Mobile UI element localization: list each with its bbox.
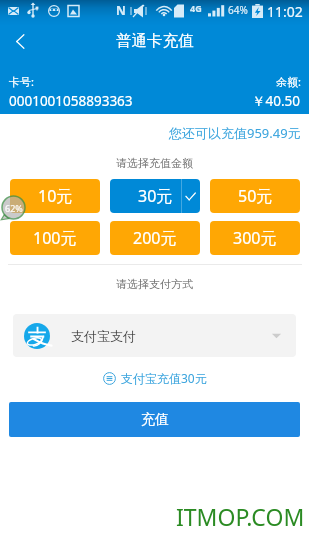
- staticText: 30元: [138, 185, 173, 207]
- staticText: 您还可以充值959.49元: [169, 124, 301, 142]
- staticText: 0001001058893363: [9, 92, 133, 110]
- staticText: ￥40.50: [252, 92, 301, 110]
- button[interactable]: Back: [3, 24, 37, 58]
- button[interactable]: 充值: [9, 402, 300, 437]
- staticText: 4G: [190, 2, 202, 14]
- button[interactable]: 支付宝支付: [13, 314, 296, 357]
- staticText: 支付宝充值30元: [121, 370, 207, 386]
- button[interactable]: 30元: [110, 179, 200, 213]
- staticText: ITMOP.COM: [176, 501, 305, 532]
- button[interactable]: 10元: [10, 179, 100, 213]
- staticText: 卡号:: [9, 74, 34, 89]
- staticText: 62%: [5, 202, 23, 214]
- staticText: 请选择支付方式: [116, 277, 193, 291]
- staticText: N: [116, 2, 126, 18]
- staticText: 300元: [233, 227, 277, 249]
- staticText: 50元: [238, 185, 273, 207]
- button[interactable]: 300元: [210, 221, 300, 255]
- staticText: 200元: [133, 227, 177, 249]
- staticText: 100元: [33, 227, 77, 249]
- button[interactable]: 50元: [210, 179, 300, 213]
- staticText: 64%: [228, 3, 248, 17]
- staticText: 余额:: [276, 74, 301, 89]
- button[interactable]: 200元: [110, 221, 200, 255]
- staticText: 11:02: [267, 2, 303, 21]
- staticText: 支付宝支付: [71, 328, 136, 344]
- staticText: 请选择充值金额: [116, 156, 193, 170]
- staticText: 普通卡充值: [116, 31, 194, 51]
- staticText: 10元: [38, 185, 73, 207]
- button[interactable]: 100元: [10, 221, 100, 255]
- staticText: 充值: [141, 411, 169, 429]
